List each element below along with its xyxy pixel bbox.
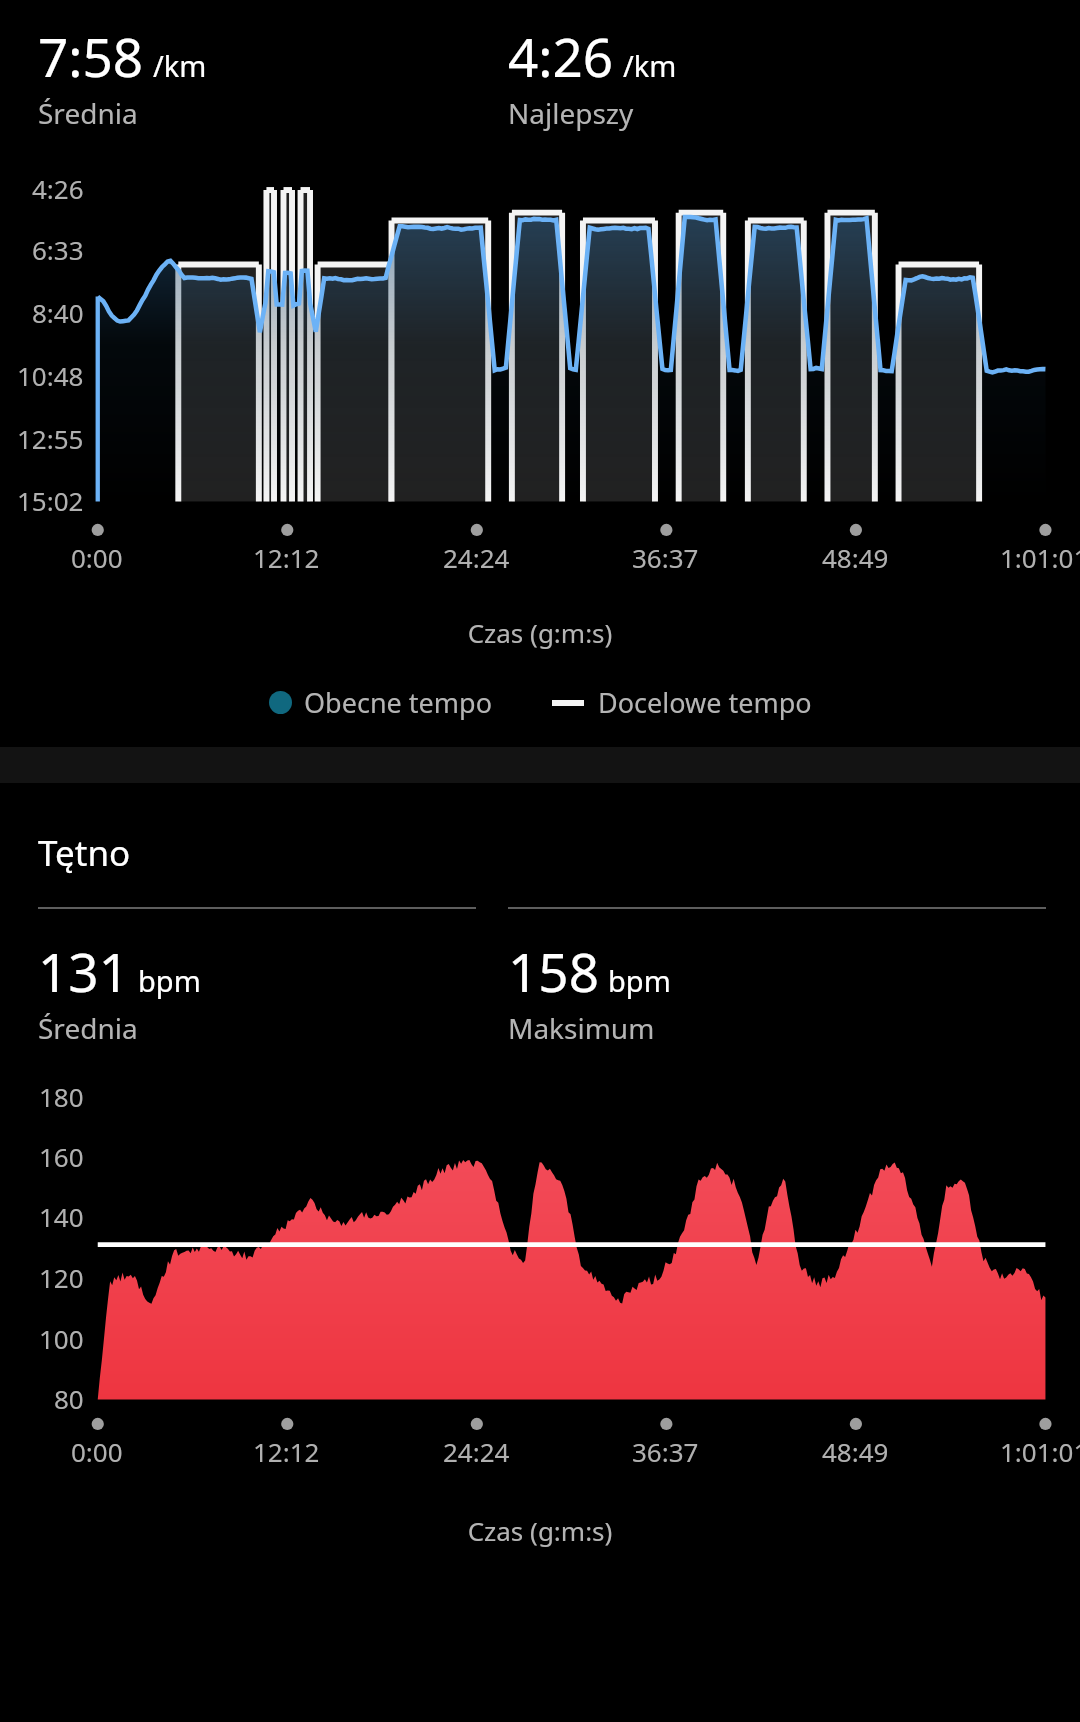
button[interactable]: Obecne tempo [265,680,496,725]
staticText: bpm [608,961,671,1000]
staticText: 36:37 [632,540,699,575]
button[interactable]: 7:58 [38,20,508,132]
staticText: 0:00 [71,540,123,575]
staticText: Tętno [38,829,131,877]
staticText: 8:40 [32,295,84,330]
staticText: 100 [39,1321,84,1356]
staticText: 140 [39,1199,84,1234]
staticText: 1:01:01 [1000,1434,1080,1469]
staticText: 12:55 [17,421,84,456]
staticText: Najlepszy [508,94,634,132]
staticText: 12:12 [253,1434,320,1469]
staticText: 12:12 [253,540,320,575]
staticText: 0:00 [71,1434,123,1469]
button[interactable]: 4:26 [508,20,948,132]
staticText: 7:58 [38,20,144,92]
staticText: 24:24 [443,1434,510,1469]
staticText: Maksimum [508,1009,655,1047]
staticText: Czas (g:m:s) [0,615,1080,650]
staticText: 48:49 [822,540,889,575]
staticText: Średnia [38,1009,138,1047]
staticText: /km [153,46,207,85]
staticText: 10:48 [17,358,84,393]
staticText: 6:33 [32,232,84,267]
staticText: 1:01:01 [1000,540,1080,575]
button[interactable]: 131 [38,935,508,1047]
staticText: 120 [39,1260,84,1295]
staticText: Docelowe tempo [598,684,812,721]
staticText: bpm [138,961,201,1000]
staticText: 48:49 [822,1434,889,1469]
staticText: 160 [39,1139,84,1174]
staticText: Obecne tempo [304,684,492,721]
staticText: Średnia [38,94,138,132]
staticText: 24:24 [443,540,510,575]
staticText: 80 [54,1381,84,1416]
staticText: 36:37 [632,1434,699,1469]
staticText: 158 [508,935,599,1007]
staticText: 131 [38,935,129,1007]
staticText: /km [623,46,677,85]
button[interactable]: 158 [508,935,948,1047]
staticText: 180 [39,1079,84,1114]
staticText: 15:02 [17,483,84,518]
staticText: 4:26 [32,171,84,206]
button[interactable]: Docelowe tempo [548,680,816,725]
staticText: 4:26 [508,20,614,92]
staticText: Czas (g:m:s) [0,1513,1080,1548]
